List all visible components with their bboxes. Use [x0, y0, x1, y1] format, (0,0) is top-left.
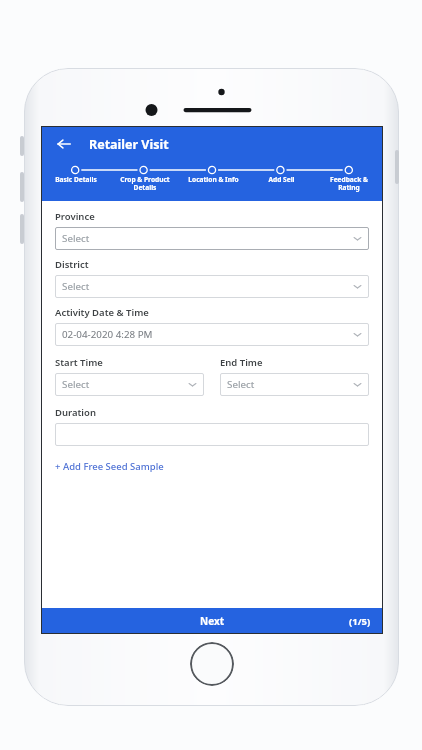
staticText: Next — [200, 614, 225, 628]
staticText: Activity Date & Time — [55, 306, 149, 319]
button[interactable]: Next — [41, 608, 383, 634]
button[interactable]: + Add Free Seed Sample — [55, 458, 164, 475]
staticText: Select — [62, 232, 90, 245]
button[interactable]: Select — [55, 373, 204, 396]
staticText: (1/5) — [349, 615, 371, 628]
staticText: 02-04-2020 4:28 PM — [62, 328, 153, 341]
staticText: Crop & Product Details — [120, 175, 170, 192]
staticText: Add Sell — [268, 175, 295, 184]
button[interactable]: Select — [220, 373, 369, 396]
staticText: Location & Info — [188, 175, 239, 184]
staticText: Basic Details — [55, 175, 97, 184]
button[interactable]: 02-04-2020 4:28 PM — [55, 323, 369, 346]
button[interactable]: Location & Info — [179, 175, 247, 184]
staticText: Feedback & Rating — [330, 175, 368, 192]
staticText: + Add Free Seed Sample — [55, 460, 164, 473]
button[interactable]: Add Sell — [247, 175, 315, 184]
other: Home — [190, 642, 234, 686]
button[interactable]: Basic Details — [41, 175, 110, 184]
staticText: Select — [227, 378, 255, 391]
staticText: Duration — [55, 406, 96, 419]
button[interactable]: Feedback & Rating — [315, 175, 383, 192]
staticText: District — [55, 258, 89, 271]
button[interactable]: Duration input — [55, 423, 369, 446]
staticText: Start Time — [55, 356, 103, 369]
staticText: End Time — [220, 356, 263, 369]
staticText: Select — [62, 280, 90, 293]
button[interactable]: Select — [55, 275, 369, 298]
staticText: Province — [55, 210, 95, 223]
staticText: Select — [62, 378, 90, 391]
button[interactable]: Back — [53, 133, 75, 155]
button[interactable]: Crop & Product Details — [110, 175, 179, 192]
staticText: Retailer Visit — [89, 136, 169, 153]
button[interactable]: Select — [55, 227, 369, 250]
